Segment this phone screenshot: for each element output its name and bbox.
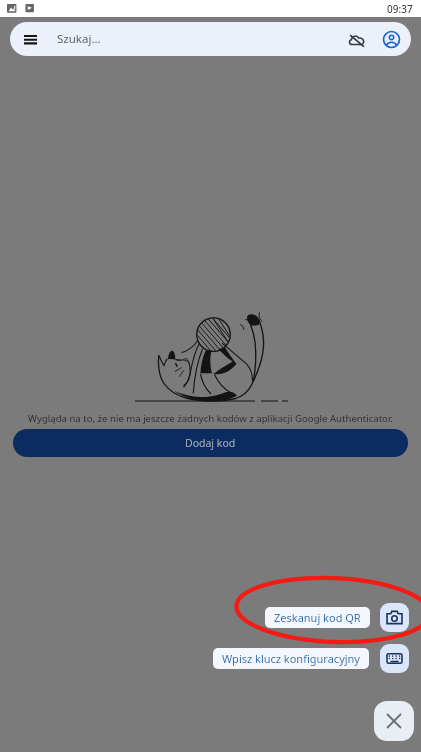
- staticText: Dodaj kod: [185, 436, 236, 450]
- staticText: Wpisz klucz konfiguracyjny: [222, 651, 360, 666]
- button[interactable]: Zeskanuj kod QR: [265, 607, 370, 628]
- staticText: Zeskanuj kod QR: [274, 610, 361, 625]
- button[interactable]: Wpisz klucz konfiguracyjny: [380, 644, 409, 673]
- button[interactable]: Wpisz klucz konfiguracyjny: [213, 648, 369, 669]
- button[interactable]: Zeskanuj kod QR: [380, 603, 409, 632]
- button[interactable]: Menu: [10, 22, 411, 56]
- staticText: Wygląda na to, że nie ma jeszcze żadnych…: [14, 412, 407, 425]
- staticText: Szukaj...: [57, 31, 101, 47]
- button[interactable]: Synchronizacja wyłączona: [342, 25, 370, 53]
- button[interactable]: Menu: [13, 22, 47, 56]
- button[interactable]: Zamknij: [374, 701, 414, 741]
- staticText: 09:37: [387, 2, 413, 16]
- button[interactable]: Dodaj kod: [13, 429, 408, 457]
- button[interactable]: Konto Google: [377, 25, 405, 53]
